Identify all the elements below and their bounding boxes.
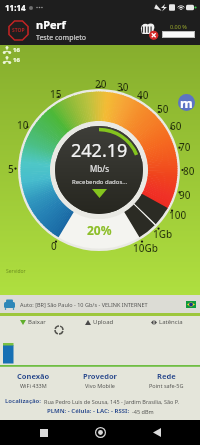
staticText: 60 <box>170 119 182 131</box>
staticText: 16 <box>13 56 20 64</box>
staticText: STOP <box>12 27 25 34</box>
button[interactable]: Auto: [BR] São Paulo - 10 Gb/s - VELINK … <box>0 295 200 313</box>
button[interactable]: Recent apps <box>31 420 57 445</box>
staticText: Rua Pedro Luis de Sousa, 145 - Jardim Br… <box>44 398 179 405</box>
button[interactable]: Rede <box>133 371 200 389</box>
staticText: 15 <box>50 87 62 99</box>
staticText: 40 <box>137 88 149 100</box>
staticText: Provedor <box>83 371 117 381</box>
staticText: 5 <box>8 162 14 174</box>
button[interactable]: Conexão <box>0 371 66 389</box>
staticText: nPerf <box>36 17 66 32</box>
button[interactable]: Offline maps <box>137 19 159 41</box>
staticText: Auto: [BR] São Paulo - 10 Gb/s - VELINK … <box>20 301 186 308</box>
button[interactable]: Stop test <box>7 19 30 42</box>
staticText: 11:14 <box>5 2 26 13</box>
staticText: Conexão <box>17 371 50 381</box>
staticText: Baixar <box>28 318 46 326</box>
staticText: Servidor <box>6 268 26 275</box>
staticText: Recebendo dados... <box>72 178 128 186</box>
staticText: 30 <box>117 80 129 92</box>
staticText: Upload <box>93 318 114 326</box>
staticText: 1Gb <box>153 227 173 239</box>
staticText: 0.00 % <box>170 23 187 30</box>
button[interactable]: nPerf logo <box>178 94 195 111</box>
staticText: m <box>180 94 193 111</box>
staticText: PLMN: - Célula: - LAC: - RSSI: <box>47 407 130 415</box>
staticText: 80 <box>183 164 195 176</box>
staticText: 20% <box>87 222 112 238</box>
staticText: 20 <box>95 77 107 89</box>
staticText: 50 <box>157 102 169 114</box>
button[interactable]: Provedor <box>66 371 133 389</box>
staticText: Mb/s <box>90 163 109 174</box>
staticText: 0 <box>51 239 57 251</box>
staticText: Latência <box>159 318 183 326</box>
staticText: -45 dBm <box>132 408 154 415</box>
staticText: Point safe-5G <box>149 382 184 389</box>
button[interactable]: Loading <box>55 326 63 334</box>
staticText: Teste completo <box>36 33 86 43</box>
button[interactable]: Latência <box>133 316 200 328</box>
staticText: 10Gb <box>133 241 158 253</box>
button[interactable]: Baixar <box>0 316 66 328</box>
button[interactable]: Back <box>144 420 170 445</box>
staticText: 16 <box>13 46 20 54</box>
staticText: 242.19 <box>71 138 128 163</box>
staticText: 90 <box>179 188 191 200</box>
staticText: Vivo Mobile <box>85 382 115 389</box>
staticText: 70 <box>179 140 191 152</box>
button[interactable]: Upload <box>66 316 133 328</box>
button[interactable]: Home <box>87 420 113 445</box>
staticText: 100 <box>169 208 187 220</box>
staticText: 10 <box>17 118 29 130</box>
staticText: Rede <box>157 371 176 381</box>
staticText: Localização: <box>5 397 42 405</box>
staticText: WiFi 433M <box>20 382 47 389</box>
